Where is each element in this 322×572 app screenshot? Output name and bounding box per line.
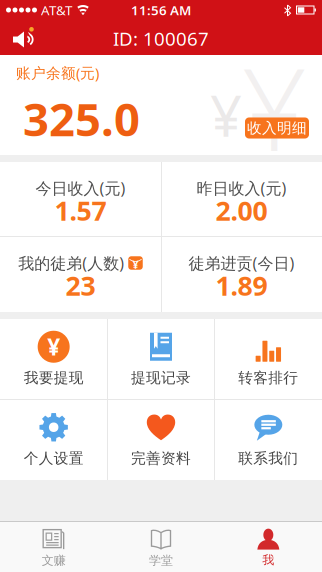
staticText: ¥ <box>210 78 242 152</box>
staticText: 完善资料 <box>131 449 191 467</box>
staticText: 2.00 <box>215 193 267 228</box>
staticText: 账户余额(元) <box>16 63 99 82</box>
staticText: 23 <box>65 268 95 303</box>
button[interactable]: 学堂 <box>107 527 215 569</box>
button[interactable]: 文赚 <box>0 527 107 569</box>
staticText: 转客排行 <box>238 369 298 387</box>
staticText: ¥ <box>241 31 306 183</box>
staticText: ID: 100067 <box>113 26 209 51</box>
button[interactable]: 提现记录 <box>107 319 215 399</box>
staticText: 收入明细 <box>247 119 307 137</box>
staticText: 提现记录 <box>131 369 191 387</box>
staticText: 我 <box>262 553 274 567</box>
staticText: 我的徒弟(人数) <box>18 252 124 274</box>
staticText: 徒弟进贡(今日) <box>188 252 294 274</box>
staticText: 1.57 <box>54 193 106 228</box>
staticText: 今日收入(元) <box>35 177 125 199</box>
button[interactable]: 我 <box>215 527 322 569</box>
staticText: 文赚 <box>42 553 66 568</box>
staticText: 昨日收入(元) <box>196 177 286 199</box>
staticText: 我要提现 <box>24 369 84 387</box>
staticText: 学堂 <box>149 553 173 568</box>
staticText: ¥ <box>132 257 138 272</box>
button[interactable]: 联系我们 <box>215 399 322 480</box>
staticText: 联系我们 <box>238 449 298 467</box>
button[interactable]: 个人设置 <box>0 399 107 480</box>
button[interactable]: Announcements <box>13 27 34 48</box>
staticText: 1.89 <box>215 268 267 303</box>
staticText: ¥ <box>47 332 60 362</box>
staticText: 11:56 AM <box>131 1 191 19</box>
staticText: AT&T <box>41 1 72 19</box>
button[interactable]: 收入明细 <box>245 117 309 138</box>
button[interactable]: 转客排行 <box>215 319 322 399</box>
staticText: 个人设置 <box>24 449 84 467</box>
staticText: 325.0 <box>23 88 140 149</box>
button[interactable]: 完善资料 <box>107 399 215 480</box>
button[interactable]: ¥ <box>0 319 107 399</box>
